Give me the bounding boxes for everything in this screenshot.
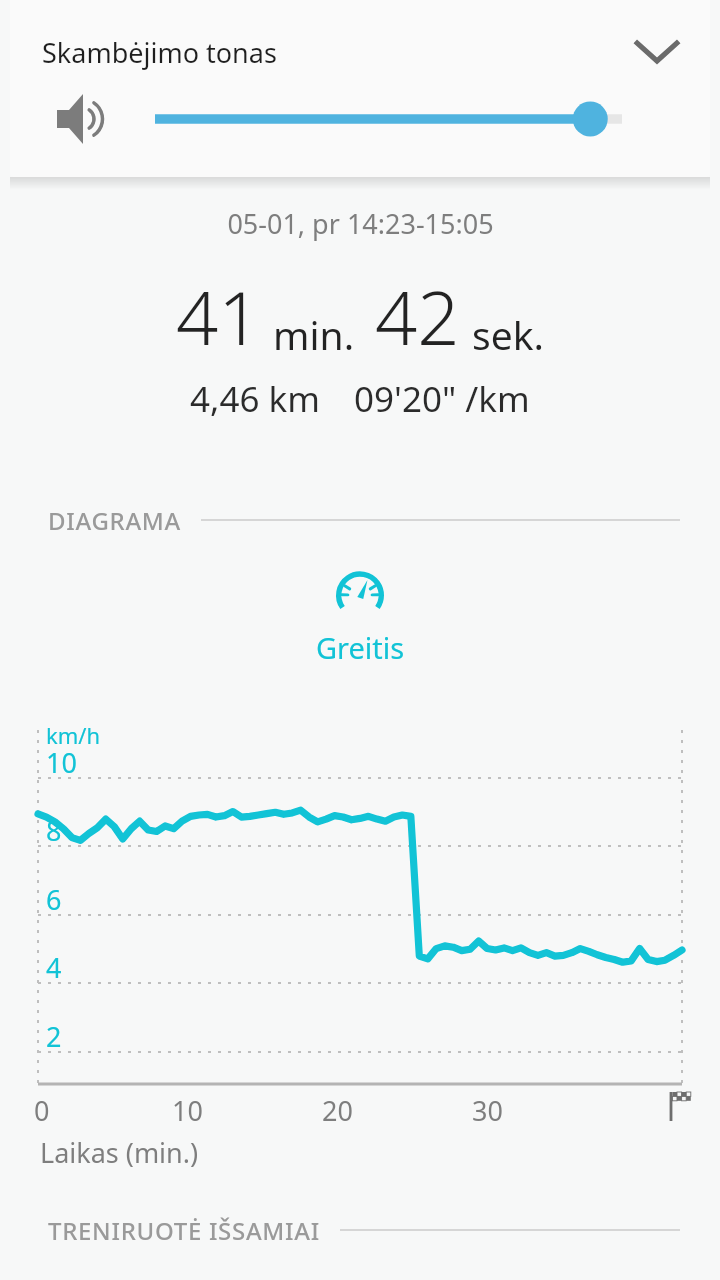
button[interactable]: Ringtone volume slider — [138, 85, 642, 153]
staticText: sek. — [472, 308, 544, 361]
staticText: Laikas (min.) — [40, 1134, 199, 1171]
staticText: 09'20" /km — [354, 375, 530, 423]
staticText: Greitis — [316, 628, 405, 667]
staticText: 4,46 km — [190, 375, 320, 423]
staticText: 30 — [472, 1092, 503, 1129]
button[interactable]: Collapse — [624, 19, 690, 85]
staticText: min. — [273, 308, 355, 361]
button[interactable]: TRENIRUOTĖ IŠSAMIAI — [48, 1210, 680, 1250]
staticText: 10 — [46, 744, 77, 781]
staticText: 0 — [34, 1092, 50, 1129]
staticText: 05-01, pr 14:23-15:05 — [227, 205, 494, 242]
staticText: km/h — [46, 720, 101, 750]
staticText: 2 — [46, 1018, 62, 1055]
staticText: TRENIRUOTĖ IŠSAMIAI — [48, 1214, 320, 1247]
staticText: DIAGRAMA — [48, 504, 181, 537]
staticText: Skambėjimo tonas — [42, 34, 277, 71]
other: Finish — [664, 1088, 702, 1126]
staticText: 20 — [322, 1092, 353, 1129]
button[interactable]: Speed — [0, 562, 720, 667]
other: Speed — [330, 562, 390, 622]
staticText: 8 — [46, 812, 62, 849]
staticText: 42 — [375, 266, 460, 367]
staticText: 10 — [172, 1092, 203, 1129]
staticText: 4 — [46, 949, 62, 986]
button[interactable]: Volume — [50, 85, 118, 153]
staticText: 41 — [176, 266, 261, 367]
button[interactable]: DIAGRAMA — [48, 500, 680, 540]
staticText: 6 — [46, 881, 62, 918]
